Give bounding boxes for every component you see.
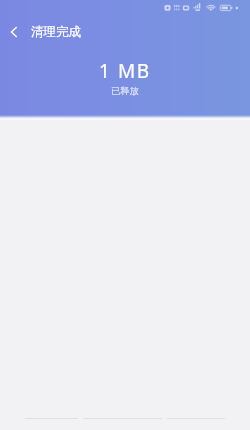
staticText: 已释放: [111, 85, 139, 97]
staticText: 清理完成: [31, 24, 81, 40]
other: Status bar: [0, 0, 250, 18]
button[interactable]: Back: [0, 18, 28, 46]
staticText: 1 MB: [99, 58, 151, 84]
